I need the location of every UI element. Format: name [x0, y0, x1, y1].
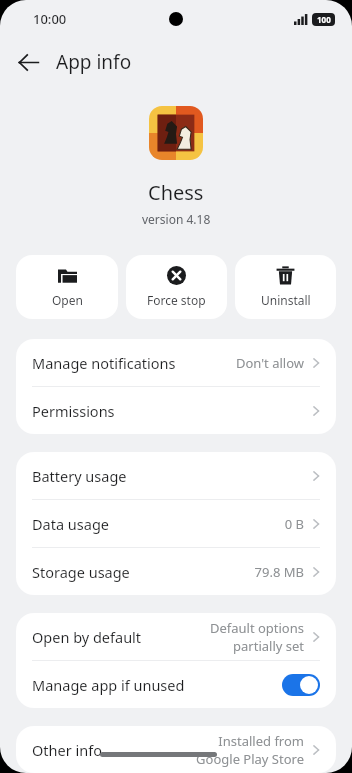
button[interactable]: Open [16, 255, 118, 319]
button[interactable]: Battery usage [16, 452, 336, 499]
staticText: Uninstall [261, 292, 311, 308]
staticText: Storage usage [32, 562, 130, 582]
staticText: Chess [148, 179, 204, 206]
button[interactable]: Data usage [16, 500, 336, 547]
button[interactable]: Back [8, 42, 48, 82]
button[interactable]: Uninstall [235, 255, 336, 319]
staticText: Force stop [147, 292, 206, 308]
staticText: Open [52, 292, 83, 308]
staticText: 100 [317, 14, 331, 25]
button[interactable]: Open by default [16, 613, 336, 660]
staticText: Default options partially set [176, 619, 304, 655]
staticText: version 4.18 [142, 211, 211, 227]
button[interactable]: Permissions [16, 387, 336, 434]
staticText: Other info [32, 740, 102, 760]
staticText: Battery usage [32, 466, 127, 486]
staticText: Manage app if unused [32, 675, 185, 695]
staticText: Manage notifications [32, 353, 176, 373]
staticText: Data usage [32, 514, 109, 534]
staticText: 10:00 [33, 10, 67, 28]
staticText: 79.8 MB [254, 563, 304, 581]
staticText: Don't allow [235, 354, 304, 372]
staticText: App info [56, 49, 132, 75]
button[interactable]: Other info [16, 726, 336, 773]
staticText: Permissions [32, 401, 115, 421]
staticText: Installed from Google Play Store [176, 732, 304, 768]
button[interactable]: Manage notifications [16, 339, 336, 386]
button[interactable]: Manage app if unused [16, 661, 336, 708]
button[interactable]: Storage usage [16, 548, 336, 595]
staticText: Open by default [32, 627, 142, 647]
staticText: 0 B [284, 515, 304, 533]
button[interactable]: Force stop [126, 255, 227, 319]
